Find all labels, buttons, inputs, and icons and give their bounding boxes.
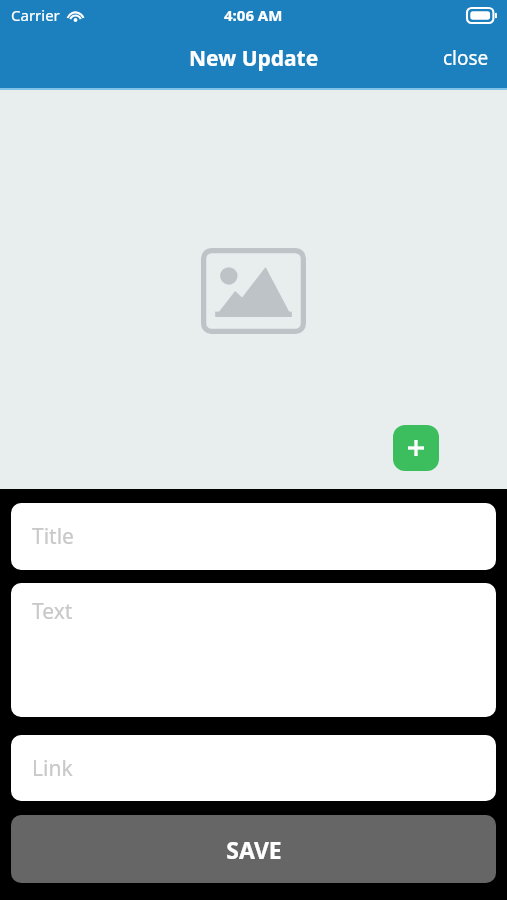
staticText: Title	[32, 522, 74, 551]
button[interactable]: Title	[11, 503, 496, 570]
staticText: close	[443, 45, 489, 71]
staticText: New Update	[189, 44, 319, 73]
staticText: 4:06 AM	[224, 5, 283, 25]
button[interactable]: close	[425, 37, 507, 79]
staticText: Text	[32, 597, 73, 626]
button[interactable]: SAVE	[11, 815, 496, 883]
button[interactable]: Text	[11, 583, 496, 717]
staticText: Carrier	[11, 5, 60, 25]
button[interactable]: Add photo	[393, 425, 439, 471]
button[interactable]: Link	[11, 735, 496, 801]
button[interactable]: Pick image	[0, 90, 507, 489]
staticText: SAVE	[226, 834, 282, 865]
staticText: Link	[32, 754, 73, 783]
